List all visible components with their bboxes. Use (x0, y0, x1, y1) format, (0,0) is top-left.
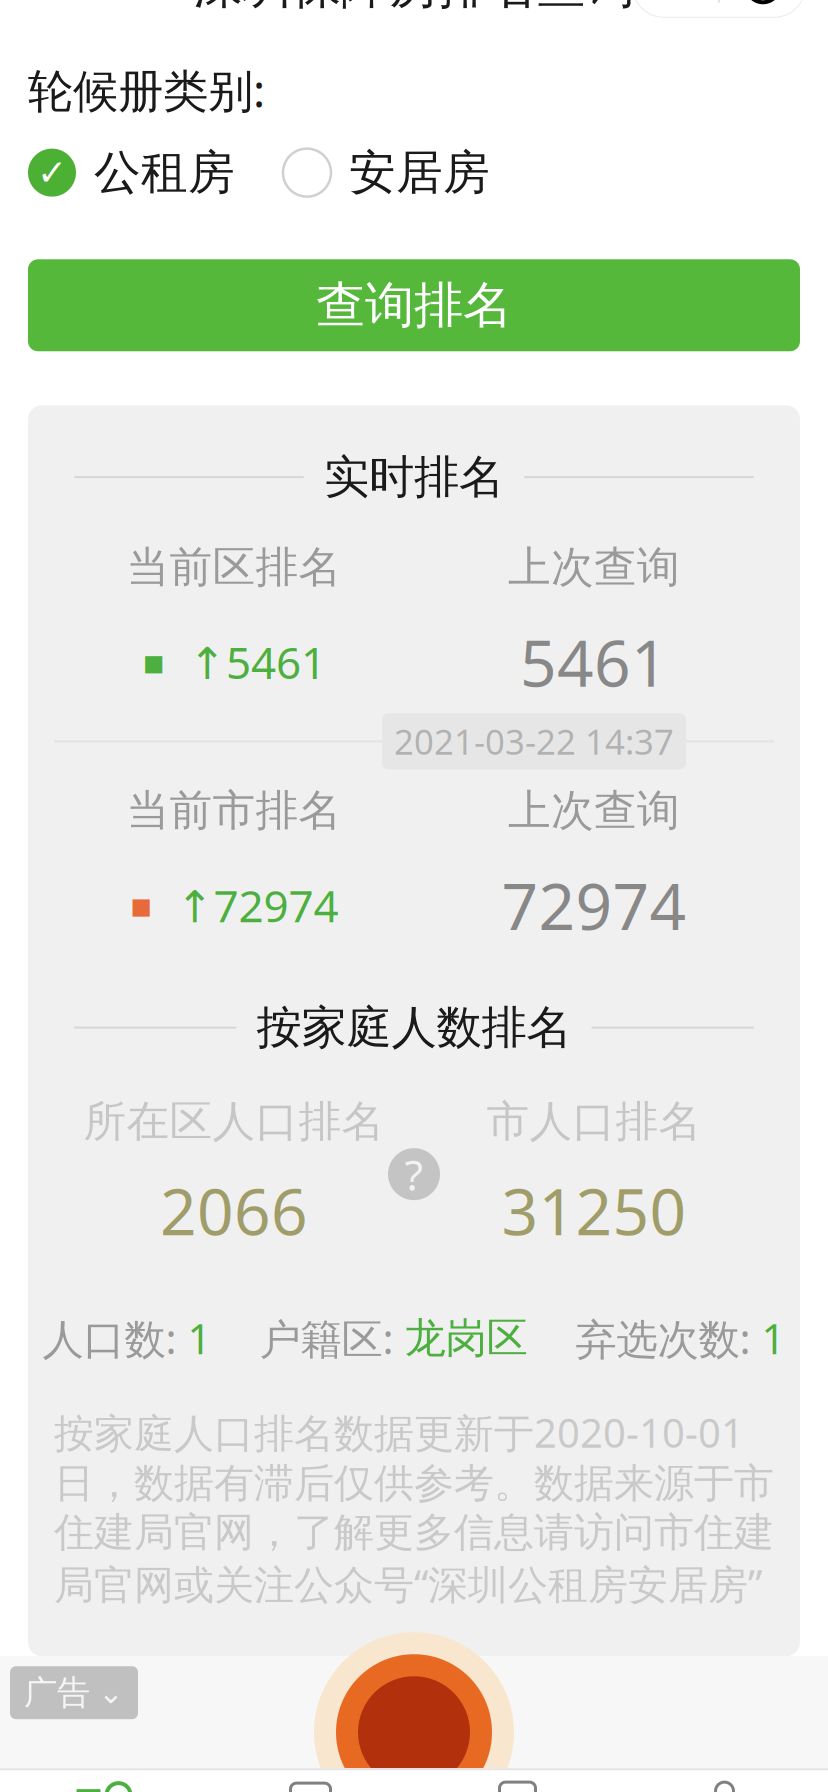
staticText: 安居房 (349, 144, 490, 201)
staticText: ▪ (129, 886, 152, 925)
staticText: ↑5461 (189, 633, 326, 691)
staticText: 弃选次数: (527, 1311, 761, 1366)
staticText: ✓ (37, 152, 67, 193)
staticText: 当前区排名 (126, 541, 341, 593)
button[interactable]: 关闭 (720, 0, 806, 18)
staticText: 户籍区: (211, 1311, 404, 1366)
staticText: 深圳保障房排名查询 (193, 0, 634, 16)
staticText: 市人口排名 (486, 1095, 701, 1148)
staticText: 1 (761, 1311, 785, 1366)
staticText: 按家庭人数排名 (256, 1000, 571, 1055)
button[interactable]: 更多 (632, 0, 718, 18)
button[interactable]: 数据汇总 (207, 1781, 414, 1792)
button[interactable]: ✓ (28, 144, 235, 201)
staticText: ↑72974 (176, 876, 338, 934)
staticText: 查询排名 (316, 275, 512, 336)
staticText: 人口数: (42, 1311, 187, 1366)
staticText: 广告 (24, 1672, 90, 1713)
staticText: 2066 (160, 1168, 308, 1253)
staticText: 2021-03-22 14:37 (394, 718, 674, 764)
staticText: 上次查询 (508, 541, 680, 593)
staticText: 公租房 (94, 144, 235, 201)
button[interactable]: 变更参考 (414, 1781, 621, 1792)
staticText: 龙岗区 (404, 1313, 527, 1364)
staticText: 轮候册类别: (28, 60, 265, 120)
staticText: 5461 (520, 619, 668, 704)
staticText: 实时排名 (324, 449, 504, 505)
staticText: ⌄ (98, 1675, 124, 1710)
staticText: ▪ (142, 642, 165, 681)
staticText: 上次查询 (508, 784, 680, 837)
staticText: 所在区人口排名 (83, 1095, 384, 1148)
button[interactable]: 关于 (621, 1781, 828, 1792)
staticText: 1 (187, 1311, 211, 1366)
staticText: ? (404, 1146, 423, 1202)
staticText: 31250 (501, 1168, 686, 1253)
button[interactable]: 安居房 (283, 144, 490, 201)
button[interactable]: 排名查询 (0, 1781, 207, 1792)
staticText: 按家庭人口排名数据更新于2020-10-01日，数据有滞后仅供参考。数据来源于市… (54, 1406, 774, 1610)
button[interactable]: 排名说明 (388, 1146, 440, 1202)
staticText: 72974 (501, 863, 686, 948)
button[interactable]: 查询排名 (28, 259, 800, 351)
staticText: 当前市排名 (126, 784, 341, 837)
